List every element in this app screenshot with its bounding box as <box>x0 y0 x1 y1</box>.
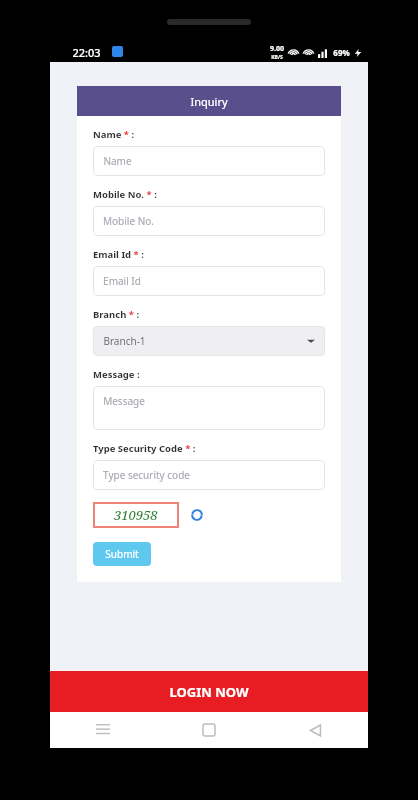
button[interactable]: Type security code <box>93 460 325 490</box>
button[interactable]: Home <box>156 712 262 748</box>
staticText: Branch-1 <box>103 334 146 348</box>
staticText: Type security code <box>103 468 190 482</box>
button[interactable]: Recent apps <box>50 712 156 748</box>
button[interactable]: Back <box>262 712 368 748</box>
staticText: Branch * : <box>93 308 140 321</box>
staticText: 310958 <box>114 506 158 524</box>
staticText: Name * : <box>93 128 135 141</box>
button[interactable]: Name <box>93 146 325 176</box>
button[interactable]: Message <box>93 386 325 430</box>
button[interactable]: Inquiry <box>77 86 341 116</box>
staticText: Email Id * : <box>93 248 144 261</box>
button[interactable]: Submit <box>93 542 151 566</box>
button[interactable]: Mobile No. <box>93 206 325 236</box>
staticText: Mobile No. * : <box>93 188 157 201</box>
staticText: 9.00 <box>270 44 284 54</box>
button[interactable]: Email Id <box>93 266 325 296</box>
staticText: Submit <box>105 547 139 561</box>
staticText: Message <box>103 394 145 408</box>
staticText: Name <box>103 154 132 168</box>
staticText: Mobile No. <box>103 214 154 228</box>
staticText: Message : <box>93 368 140 381</box>
staticText: 69% <box>333 47 350 58</box>
staticText: KB/S <box>271 54 283 61</box>
button[interactable]: LOGIN NOW <box>50 671 368 712</box>
staticText: LOGIN NOW <box>169 683 249 701</box>
staticText: 22:03 <box>72 45 101 60</box>
staticText: Type Security Code * : <box>93 442 196 455</box>
button[interactable]: Branch-1 <box>93 326 325 356</box>
staticText: Inquiry <box>190 94 228 109</box>
button[interactable]: Refresh security code <box>188 506 206 524</box>
staticText: Email Id <box>103 274 141 288</box>
